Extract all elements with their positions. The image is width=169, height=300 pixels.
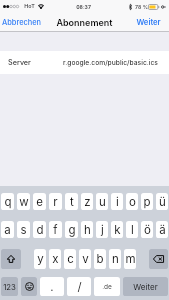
button[interactable]: b: [94, 249, 106, 269]
staticText: e: [36, 195, 43, 209]
staticText: u: [99, 195, 106, 209]
staticText: Weiter: [133, 282, 158, 292]
button[interactable]: Weiter: [136, 18, 161, 27]
button[interactable]: 123: [1, 277, 18, 296]
staticText: ö: [144, 223, 151, 237]
button[interactable]: j: [96, 221, 108, 238]
staticText: i: [116, 195, 119, 209]
staticText: Abonnement: [56, 17, 113, 28]
button[interactable]: f: [49, 221, 62, 238]
staticText: j: [101, 223, 104, 237]
staticText: .de: [102, 283, 112, 291]
staticText: m: [125, 252, 136, 266]
staticText: h: [84, 223, 91, 237]
staticText: q: [4, 195, 12, 209]
button[interactable]: x: [49, 249, 61, 269]
staticText: 08:37: [76, 4, 91, 10]
button[interactable]: z: [81, 193, 93, 210]
button[interactable]: u: [96, 193, 108, 210]
button[interactable]: i: [111, 193, 123, 210]
staticText: Weiter: [136, 18, 161, 27]
staticText: c: [67, 252, 74, 266]
staticText: .: [50, 280, 54, 294]
staticText: l: [131, 223, 134, 237]
button[interactable]: o: [126, 193, 138, 210]
button[interactable]: q: [1, 193, 14, 210]
button[interactable]: e: [33, 193, 46, 210]
staticText: x: [52, 252, 59, 266]
staticText: /: [77, 280, 82, 294]
staticText: d: [36, 223, 44, 237]
button[interactable]: /: [67, 277, 91, 296]
staticText: 123: [3, 282, 16, 291]
staticText: z: [84, 195, 91, 209]
button[interactable]: t: [65, 193, 78, 210]
staticText: p: [143, 195, 151, 209]
staticText: g: [68, 223, 76, 237]
button[interactable]: l: [126, 221, 138, 238]
button[interactable]: Weiter: [123, 277, 168, 296]
button[interactable]: .de: [94, 277, 120, 296]
button[interactable]: ö: [141, 221, 153, 238]
staticText: ü: [159, 195, 166, 209]
button[interactable]: Shift: [1, 249, 21, 269]
button[interactable]: p: [141, 193, 153, 210]
staticText: ä: [159, 223, 166, 237]
button[interactable]: a: [1, 221, 14, 238]
staticText: r: [53, 195, 58, 209]
button[interactable]: m: [124, 249, 136, 269]
button[interactable]: c: [64, 249, 76, 269]
staticText: o: [129, 195, 136, 209]
button[interactable]: .: [40, 277, 64, 296]
staticText: a: [4, 223, 11, 237]
button[interactable]: v: [79, 249, 91, 269]
staticText: 78 %: [135, 4, 148, 10]
button[interactable]: s: [17, 221, 30, 238]
staticText: t: [70, 195, 74, 209]
staticText: v: [82, 252, 89, 266]
button[interactable]: g: [65, 221, 78, 238]
button[interactable]: n: [109, 249, 121, 269]
button[interactable]: r: [49, 193, 62, 210]
staticText: f: [53, 223, 58, 237]
button[interactable]: y: [34, 249, 46, 269]
button[interactable]: d: [33, 221, 46, 238]
button[interactable]: Delete: [149, 249, 168, 269]
staticText: k: [114, 223, 121, 237]
staticText: y: [37, 252, 44, 266]
staticText: Abbrechen: [2, 18, 41, 27]
staticText: HoT: [24, 3, 35, 10]
staticText: w: [19, 195, 29, 209]
button[interactable]: k: [111, 221, 123, 238]
button[interactable]: Server: [0, 51, 169, 74]
staticText: r.google.com/public/basic.ics: [63, 59, 158, 67]
button[interactable]: h: [81, 221, 93, 238]
button[interactable]: ü: [156, 193, 168, 210]
button[interactable]: ä: [156, 221, 168, 238]
button[interactable]: w: [17, 193, 30, 210]
staticText: Server: [8, 58, 31, 67]
staticText: b: [96, 252, 104, 266]
button[interactable]: Abbrechen: [2, 18, 41, 27]
staticText: s: [20, 223, 27, 237]
staticText: n: [112, 252, 119, 266]
button[interactable]: Emoji: [21, 277, 37, 296]
